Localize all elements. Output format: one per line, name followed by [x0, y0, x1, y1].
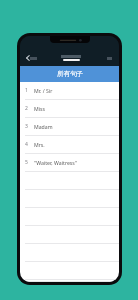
staticText: 5	[25, 159, 28, 166]
button[interactable]	[20, 244, 119, 262]
staticText: Mrs.	[34, 141, 45, 148]
staticText: 4	[25, 141, 28, 148]
button[interactable]: 5	[20, 154, 119, 172]
button[interactable]: Back	[24, 51, 40, 65]
button[interactable]: More options	[103, 51, 115, 65]
button[interactable]	[20, 172, 119, 190]
button[interactable]: 4	[20, 136, 119, 154]
button[interactable]: 1	[20, 82, 119, 100]
staticText: Miss	[34, 105, 46, 112]
staticText: Madam	[34, 123, 53, 130]
button[interactable]: 3	[20, 118, 119, 136]
button[interactable]	[20, 208, 119, 226]
button[interactable]	[20, 190, 119, 208]
button[interactable]: 所有句子	[20, 66, 119, 82]
button[interactable]	[20, 226, 119, 244]
staticText: 1	[25, 87, 28, 94]
staticText: Mr. / Sir	[34, 87, 53, 94]
button[interactable]	[20, 262, 119, 280]
staticText: 所有句子	[57, 70, 83, 78]
staticText: "Waiter, Waitress"	[34, 159, 77, 166]
button[interactable]: 2	[20, 100, 119, 118]
button[interactable]	[20, 280, 119, 282]
staticText: 3	[25, 123, 28, 130]
staticText: 2	[25, 105, 28, 112]
